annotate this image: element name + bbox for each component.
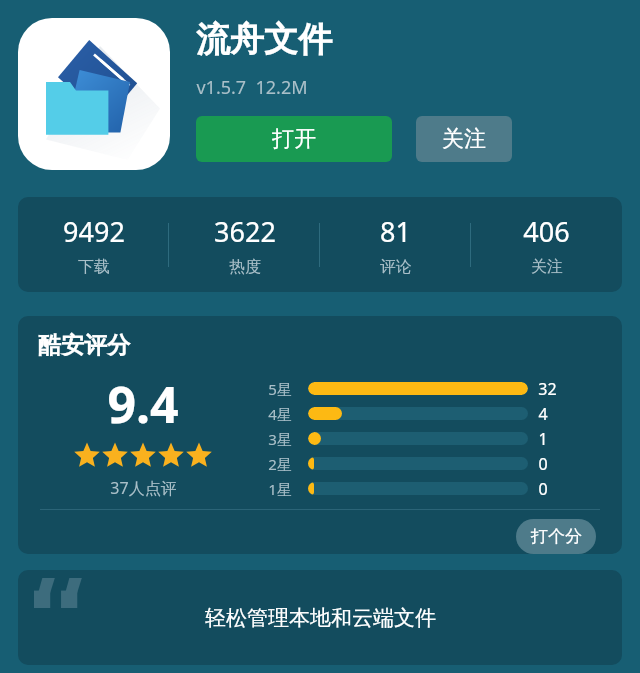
- staticText: 酷安评分: [38, 331, 130, 360]
- staticText: 关注: [442, 125, 486, 153]
- staticText: 0: [538, 453, 548, 475]
- staticText: 打个分: [531, 526, 582, 547]
- staticText: 5星: [268, 379, 292, 399]
- staticText: 流舟文件: [196, 18, 332, 61]
- staticText: 2星: [268, 454, 292, 474]
- staticText: 9.4: [107, 370, 179, 438]
- staticText: 32: [538, 378, 557, 400]
- staticText: v1.5.7 12.2M: [196, 75, 308, 100]
- staticText: 81: [380, 213, 411, 250]
- staticText: 0: [538, 478, 548, 500]
- staticText: 下载: [78, 257, 110, 277]
- staticText: 评论: [380, 257, 412, 277]
- staticText: 1星: [268, 479, 292, 499]
- staticText: 4: [538, 403, 548, 425]
- staticText: 轻松管理本地和云端文件: [205, 605, 436, 631]
- staticText: 1: [538, 428, 548, 450]
- button[interactable]: 打个分: [516, 519, 596, 554]
- staticText: 打开: [272, 125, 316, 153]
- staticText: 4星: [268, 404, 292, 424]
- button[interactable]: 打开: [196, 116, 392, 162]
- button[interactable]: 关注: [416, 116, 512, 162]
- staticText: 关注: [531, 257, 563, 277]
- staticText: 9492: [63, 213, 125, 250]
- button[interactable]: 轻松管理本地和云端文件: [18, 570, 622, 665]
- staticText: 37人点评: [110, 477, 177, 499]
- staticText: 3622: [214, 213, 276, 250]
- staticText: 406: [523, 213, 570, 250]
- staticText: 3星: [268, 429, 292, 449]
- staticText: 热度: [229, 257, 261, 277]
- button[interactable]: App icon: [18, 18, 170, 170]
